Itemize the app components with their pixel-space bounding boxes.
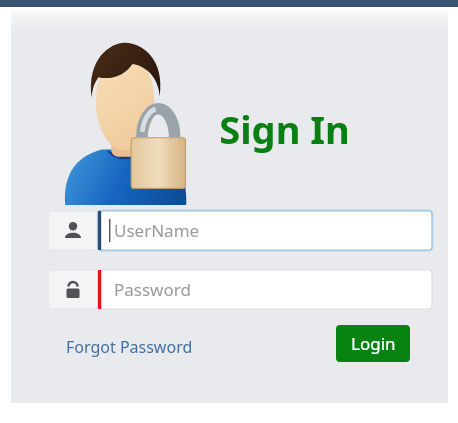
button[interactable]: Password bbox=[48, 264, 432, 315]
staticText: Forgot Password bbox=[66, 336, 193, 358]
staticText: Login bbox=[351, 332, 396, 355]
staticText: UserName bbox=[114, 219, 200, 242]
other: Password bbox=[48, 270, 98, 309]
button[interactable]: Login bbox=[336, 325, 410, 362]
button[interactable]: User name bbox=[48, 205, 432, 256]
staticText: Sign In bbox=[219, 103, 350, 155]
staticText: Password bbox=[114, 278, 191, 301]
button[interactable]: Forgot Password bbox=[63, 331, 196, 363]
other: User name bbox=[48, 211, 98, 250]
